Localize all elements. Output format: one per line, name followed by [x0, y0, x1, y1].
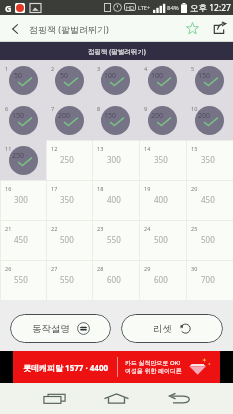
button[interactable]: 30 — [186, 260, 233, 300]
button[interactable]: 5 — [186, 60, 233, 100]
staticText: 350 — [154, 154, 168, 165]
button[interactable]: 23 — [92, 220, 139, 260]
staticText: 5 — [191, 65, 195, 72]
staticText: 리셋 — [153, 323, 172, 335]
button[interactable]: 10 — [186, 100, 233, 140]
button[interactable]: 25 — [186, 220, 233, 260]
staticText: 500 — [154, 234, 168, 245]
button[interactable]: 동작설명 — [10, 314, 111, 343]
button[interactable]: 6 — [0, 100, 46, 140]
staticText: 10 — [191, 105, 198, 112]
staticText: 250 — [12, 151, 25, 161]
staticText: 점핑잭 (팔벌려뛰기) — [88, 47, 146, 56]
staticText: 28 — [97, 265, 104, 272]
button[interactable]: 11 — [0, 140, 46, 180]
staticText: 500 — [60, 234, 74, 245]
staticText: 450 — [14, 234, 28, 245]
button[interactable]: 4 — [139, 60, 186, 100]
button[interactable]: 18 — [92, 180, 139, 220]
button[interactable]: 17 — [46, 180, 92, 220]
staticText: 550 — [60, 274, 74, 285]
staticText: 11 — [5, 145, 12, 152]
staticText: 18 — [97, 185, 104, 192]
staticText: 8 — [97, 105, 101, 112]
staticText: 25 — [191, 225, 198, 232]
button[interactable]: 12 — [46, 140, 92, 180]
button[interactable]: 28 — [92, 260, 139, 300]
button[interactable]: Recents — [23, 383, 85, 414]
staticText: 17 — [51, 185, 58, 192]
staticText: 오후 12:27 — [190, 2, 231, 14]
button[interactable]: Back — [0, 15, 29, 42]
staticText: 50 — [60, 71, 69, 81]
staticText: 26 — [5, 265, 12, 272]
staticText: 4 — [144, 65, 148, 72]
staticText: 700 — [201, 274, 215, 285]
button[interactable]: 26 — [0, 260, 46, 300]
button[interactable]: 21 — [0, 220, 46, 260]
staticText: 9 — [144, 105, 148, 112]
button[interactable]: 20 — [186, 180, 233, 220]
button[interactable]: 27 — [46, 260, 92, 300]
staticText: 200 — [198, 111, 211, 121]
staticText: 24 — [144, 225, 151, 232]
button[interactable]: Back — [148, 383, 211, 414]
button[interactable]: 14 — [139, 140, 186, 180]
button[interactable]: 8 — [92, 100, 139, 140]
staticText: 여성을 위한 레이디론 — [125, 367, 183, 375]
staticText: 3 — [97, 65, 101, 72]
button[interactable]: 3 — [92, 60, 139, 100]
staticText: 600 — [154, 274, 168, 285]
staticText: 300 — [14, 194, 28, 205]
button[interactable]: 15 — [186, 140, 233, 180]
staticText: 250 — [60, 154, 74, 165]
button[interactable]: 리셋 — [121, 314, 223, 343]
staticText: 100 — [151, 71, 164, 81]
staticText: 84% — [167, 4, 179, 12]
button[interactable]: 1 — [0, 60, 46, 100]
button[interactable]: 19 — [139, 180, 186, 220]
staticText: 카드 실적만으로 OK! — [125, 359, 181, 367]
staticText: 50 — [14, 71, 23, 81]
button[interactable]: Favorite — [179, 15, 206, 42]
staticText: 27 — [51, 265, 58, 272]
button[interactable]: 24 — [139, 220, 186, 260]
staticText: 450 — [201, 194, 215, 205]
staticText: 동작설명 — [32, 323, 70, 335]
staticText: 550 — [14, 274, 28, 285]
staticText: 21 — [5, 225, 12, 232]
staticText: 13 — [97, 145, 104, 152]
staticText: 29 — [144, 265, 151, 272]
staticText: 23 — [97, 225, 104, 232]
staticText: 150 — [12, 111, 25, 121]
button[interactable]: 9 — [139, 100, 186, 140]
button[interactable]: Share — [206, 15, 233, 42]
staticText: 20 — [191, 185, 198, 192]
staticText: 19 — [144, 185, 151, 192]
staticText: 500 — [201, 234, 215, 245]
staticText: 22 — [51, 225, 58, 232]
staticText: 롯데캐피탈 1577 · 4400 — [23, 362, 109, 373]
button[interactable]: 7 — [46, 100, 92, 140]
staticText: G — [5, 2, 12, 14]
staticText: 15 — [191, 145, 198, 152]
staticText: 100 — [104, 71, 117, 81]
button[interactable]: Advertisement — [13, 351, 220, 383]
staticText: 점핑잭 (팔벌려뛰기) — [29, 23, 109, 35]
staticText: 150 — [198, 71, 211, 81]
button[interactable]: 29 — [139, 260, 186, 300]
staticText: 550 — [107, 234, 121, 245]
staticText: 12 — [51, 145, 58, 152]
button[interactable]: 16 — [0, 180, 46, 220]
staticText: 16 — [5, 185, 12, 192]
staticText: 600 — [107, 274, 121, 285]
staticText: 400 — [154, 194, 168, 205]
button[interactable]: 2 — [46, 60, 92, 100]
button[interactable]: 13 — [92, 140, 139, 180]
button[interactable]: 22 — [46, 220, 92, 260]
staticText: 350 — [60, 194, 74, 205]
button[interactable]: Home — [85, 383, 148, 414]
staticText: 200 — [151, 111, 164, 121]
staticText: HD — [126, 4, 135, 11]
staticText: 350 — [201, 154, 215, 165]
